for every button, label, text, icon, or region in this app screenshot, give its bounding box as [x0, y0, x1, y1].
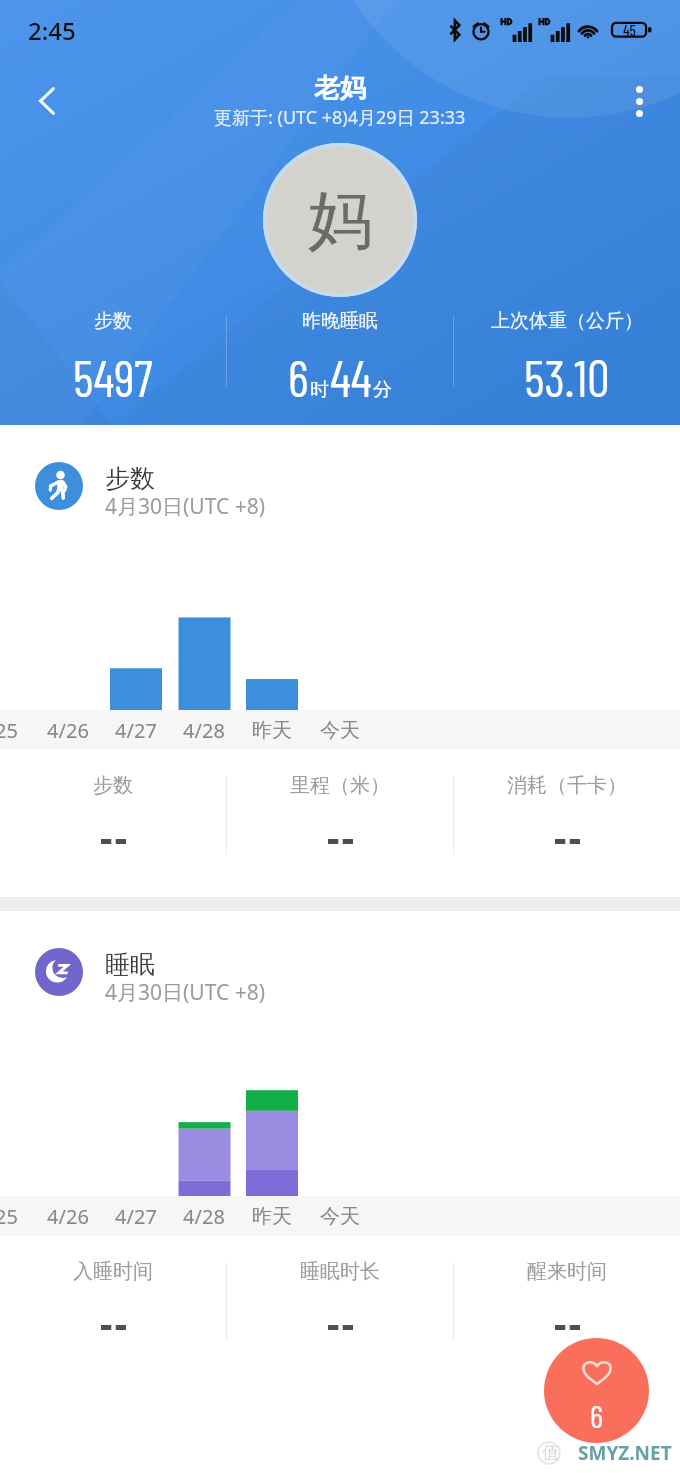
- staticText: 消耗（千卡）: [507, 773, 627, 798]
- staticText: 步数: [93, 773, 133, 798]
- staticText: 今天: [320, 1204, 360, 1229]
- button[interactable]: Back: [16, 70, 78, 132]
- staticText: 昨天: [252, 718, 292, 743]
- staticText: 6: [590, 1396, 604, 1434]
- staticText: 更新于: (UTC +8)4月29日 23:33: [214, 105, 466, 130]
- staticText: 53.10: [524, 347, 610, 404]
- staticText: 醒来时间: [527, 1259, 607, 1284]
- button[interactable]: 上次体重（公斤）: [454, 304, 680, 404]
- staticText: 分: [373, 378, 392, 402]
- staticText: 4月30日(UTC +8): [105, 492, 265, 521]
- staticText: 4/28: [183, 1203, 225, 1230]
- button[interactable]: 步数: [0, 304, 226, 404]
- staticText: 睡眠时长: [300, 1259, 380, 1284]
- staticText: 睡眠: [105, 949, 155, 980]
- button[interactable]: Profile avatar: [263, 143, 417, 297]
- staticText: 4/25: [0, 717, 18, 744]
- staticText: 4/25: [0, 1203, 18, 1230]
- staticText: 4/27: [115, 1203, 157, 1230]
- staticText: 4/26: [47, 717, 89, 744]
- button[interactable]: 昨晚睡眠: [227, 304, 453, 404]
- staticText: 44: [330, 347, 372, 404]
- staticText: SMYZ.NET: [578, 1440, 672, 1466]
- staticText: 妈: [308, 180, 372, 261]
- button[interactable]: 步数: [0, 425, 680, 547]
- staticText: 步数: [94, 309, 132, 333]
- staticText: 今天: [320, 718, 360, 743]
- button[interactable]: 睡眠: [0, 911, 680, 1033]
- staticText: 4/26: [47, 1203, 89, 1230]
- staticText: 2:45: [28, 14, 76, 47]
- staticText: 步数: [105, 463, 155, 494]
- staticText: 上次体重（公斤）: [491, 309, 643, 333]
- staticText: 4/28: [183, 717, 225, 744]
- button[interactable]: 入睡时间: [0, 1236, 226, 1361]
- staticText: 里程（米）: [290, 773, 390, 798]
- button[interactable]: More options: [608, 70, 670, 132]
- staticText: 老妈: [314, 72, 366, 105]
- button[interactable]: 步数: [0, 750, 226, 875]
- staticText: 45: [623, 21, 636, 39]
- staticText: 5497: [73, 347, 153, 404]
- staticText: 昨晚睡眠: [302, 309, 378, 333]
- staticText: 4月30日(UTC +8): [105, 978, 265, 1007]
- staticText: 昨天: [252, 1204, 292, 1229]
- button[interactable]: 里程（米）: [227, 750, 453, 875]
- staticText: 入睡时间: [73, 1259, 153, 1284]
- staticText: 值: [542, 1442, 559, 1463]
- button[interactable]: 消耗（千卡）: [454, 750, 680, 875]
- button[interactable]: Health score 6: [544, 1338, 649, 1443]
- button[interactable]: 睡眠时长: [227, 1236, 453, 1361]
- staticText: 4/27: [115, 717, 157, 744]
- button[interactable]: 醒来时间: [454, 1236, 680, 1361]
- staticText: 6: [288, 347, 309, 404]
- staticText: 时: [310, 378, 329, 402]
